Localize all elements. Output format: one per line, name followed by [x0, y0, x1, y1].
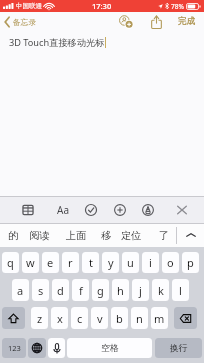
button[interactable]: 移: [97, 223, 116, 247]
button[interactable]: i: [142, 252, 159, 273]
button[interactable]: j: [132, 279, 149, 301]
button[interactable]: Close keyboard: [173, 196, 191, 223]
button[interactable]: b: [111, 307, 128, 329]
button[interactable]: Add attachment: [111, 196, 129, 223]
button[interactable]: d: [52, 279, 69, 301]
staticText: n: [136, 311, 143, 326]
staticText: g: [97, 283, 104, 298]
staticText: p: [187, 255, 194, 270]
button[interactable]: t: [82, 252, 99, 273]
staticText: 123: [8, 343, 21, 353]
staticText: b: [116, 311, 123, 326]
button[interactable]: Add people: [116, 12, 135, 31]
button[interactable]: 定位: [117, 223, 146, 247]
staticText: x: [57, 311, 63, 326]
button[interactable]: 备忘录: [2, 12, 39, 31]
button[interactable]: a: [12, 279, 29, 301]
staticText: 阅读: [29, 229, 50, 242]
staticText: 了: [159, 229, 170, 242]
button[interactable]: s: [32, 279, 49, 301]
staticText: s: [38, 283, 44, 298]
staticText: 上面: [66, 229, 87, 242]
button[interactable]: e: [42, 252, 59, 273]
button[interactable]: r: [62, 252, 79, 273]
staticText: v: [97, 311, 103, 326]
button[interactable]: Switch keyboard: [28, 338, 46, 358]
staticText: f: [79, 283, 83, 298]
staticText: 17:30: [92, 1, 112, 11]
button[interactable]: l: [172, 279, 189, 301]
button[interactable]: Aa: [52, 196, 74, 223]
staticText: 空格: [101, 343, 119, 354]
button[interactable]: h: [112, 279, 129, 301]
staticText: 的: [8, 229, 19, 242]
staticText: 定位: [121, 229, 142, 242]
staticText: a: [17, 283, 24, 298]
staticText: o: [167, 255, 174, 270]
staticText: m: [154, 311, 165, 326]
button[interactable]: Markup: [139, 196, 157, 223]
staticText: l: [179, 283, 182, 298]
staticText: Aa: [57, 203, 69, 217]
staticText: y: [108, 255, 114, 270]
button[interactable]: Checklist: [82, 196, 100, 223]
button[interactable]: Backspace: [174, 307, 197, 329]
button[interactable]: z: [31, 307, 48, 329]
button[interactable]: Expand candidates: [177, 223, 204, 247]
button[interactable]: q: [2, 252, 19, 273]
button[interactable]: c: [71, 307, 88, 329]
button[interactable]: Dictation: [48, 338, 65, 358]
staticText: 3D Touch直接移动光标: [9, 36, 105, 49]
staticText: i: [149, 255, 152, 270]
staticText: q: [7, 255, 14, 270]
staticText: e: [47, 255, 54, 270]
staticText: h: [117, 283, 124, 298]
button[interactable]: 的: [4, 223, 23, 247]
staticText: u: [127, 255, 134, 270]
staticText: 备忘录: [13, 17, 37, 27]
button[interactable]: 完成: [174, 12, 200, 31]
button[interactable]: g: [92, 279, 109, 301]
button[interactable]: u: [122, 252, 139, 273]
staticText: 移: [101, 229, 112, 242]
staticText: j: [139, 283, 142, 298]
button[interactable]: x: [51, 307, 68, 329]
button[interactable]: v: [91, 307, 108, 329]
staticText: k: [158, 283, 164, 298]
button[interactable]: p: [182, 252, 199, 273]
button[interactable]: n: [131, 307, 148, 329]
button[interactable]: 阅读: [25, 223, 54, 247]
button[interactable]: 空格: [67, 338, 152, 358]
staticText: w: [26, 255, 35, 270]
button[interactable]: m: [151, 307, 168, 329]
staticText: t: [89, 255, 93, 270]
staticText: z: [37, 311, 43, 326]
staticText: d: [57, 283, 64, 298]
button[interactable]: k: [152, 279, 169, 301]
button[interactable]: o: [162, 252, 179, 273]
button[interactable]: w: [22, 252, 39, 273]
button[interactable]: 换行: [155, 338, 202, 358]
button[interactable]: Insert table: [19, 196, 37, 223]
staticText: c: [77, 311, 83, 326]
staticText: 完成: [178, 16, 196, 27]
button[interactable]: f: [72, 279, 89, 301]
button[interactable]: y: [102, 252, 119, 273]
staticText: 78%: [171, 2, 184, 11]
button[interactable]: 上面: [62, 223, 91, 247]
button[interactable]: 了: [155, 223, 174, 247]
staticText: r: [68, 255, 73, 270]
button[interactable]: Shift: [2, 307, 25, 329]
button[interactable]: Share: [148, 12, 164, 31]
button[interactable]: 123: [2, 338, 26, 358]
staticText: 换行: [170, 343, 188, 354]
staticText: 中国联通: [16, 2, 42, 10]
